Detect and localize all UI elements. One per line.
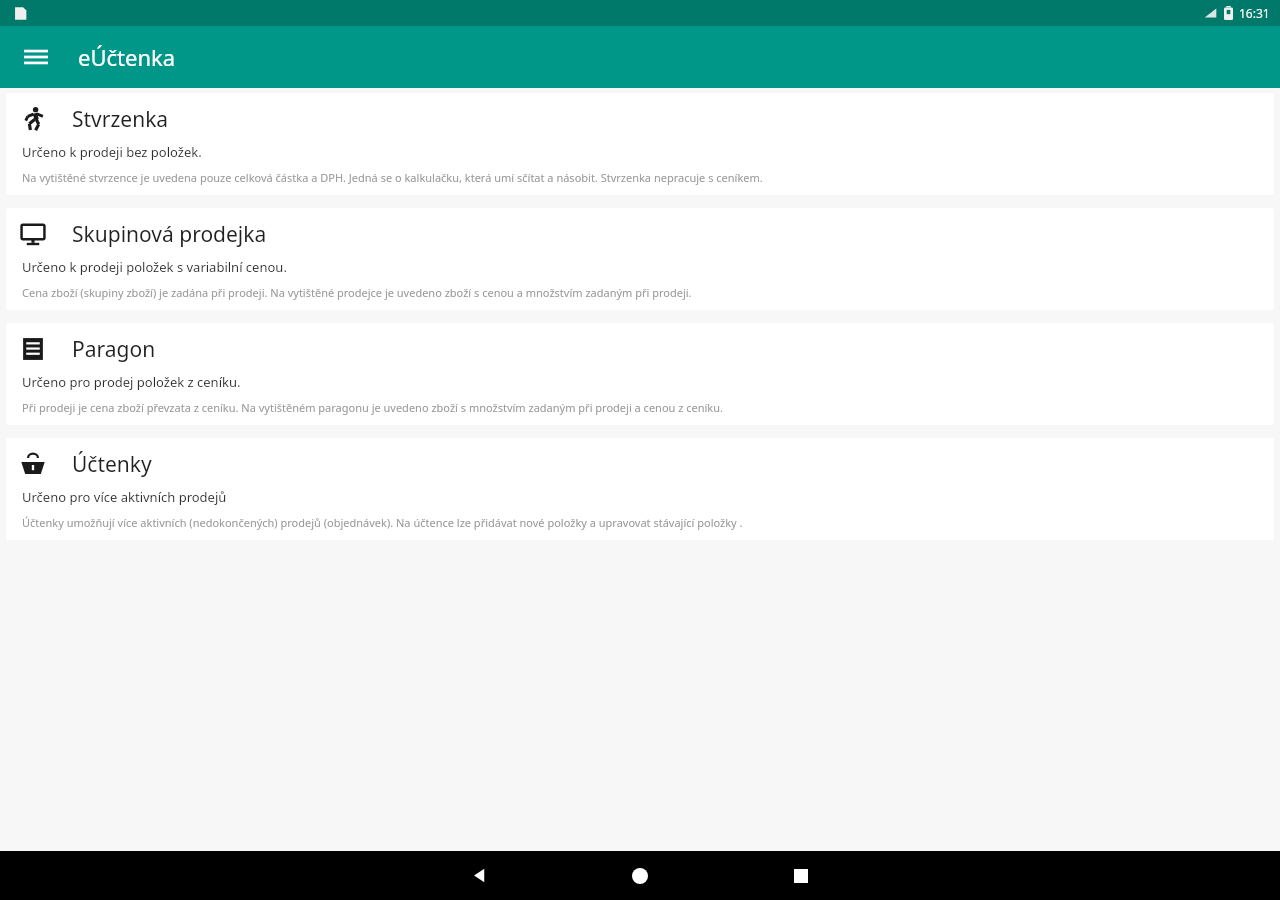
staticText: Skupinová prodejka	[72, 220, 267, 249]
staticText: Na vytištěné stvrzence je uvedena pouze …	[22, 170, 763, 185]
button[interactable]: Stvrzenka	[6, 93, 1274, 195]
staticText: Cena zboží (skupiny zboží) je zadána při…	[22, 285, 692, 300]
staticText: Určeno pro prodej položek z ceníku.	[22, 373, 241, 391]
button[interactable]: Skupinová prodejka	[6, 208, 1274, 310]
button[interactable]: Účtenky	[6, 438, 1274, 540]
button[interactable]: Home	[559, 851, 721, 900]
staticText: eÚčtenka	[78, 42, 176, 72]
button[interactable]: Open navigation menu	[14, 35, 58, 79]
staticText: Určeno k prodeji položek s variabilní ce…	[22, 258, 287, 276]
staticText: Stvrzenka	[72, 105, 169, 134]
staticText: 16:31	[1239, 5, 1270, 21]
staticText: Účtenky umožňují více aktivních (nedokon…	[22, 515, 743, 530]
staticText: Při prodeji je cena zboží převzata z cen…	[22, 400, 723, 415]
staticText: Paragon	[72, 335, 156, 364]
button[interactable]: Paragon	[6, 323, 1274, 425]
staticText: Určeno pro více aktivních prodejů	[22, 488, 227, 506]
staticText: Účtenky	[72, 450, 152, 479]
button[interactable]: Recent apps	[721, 851, 881, 900]
staticText: Určeno k prodeji bez položek.	[22, 143, 202, 161]
button[interactable]: Back	[399, 851, 559, 900]
